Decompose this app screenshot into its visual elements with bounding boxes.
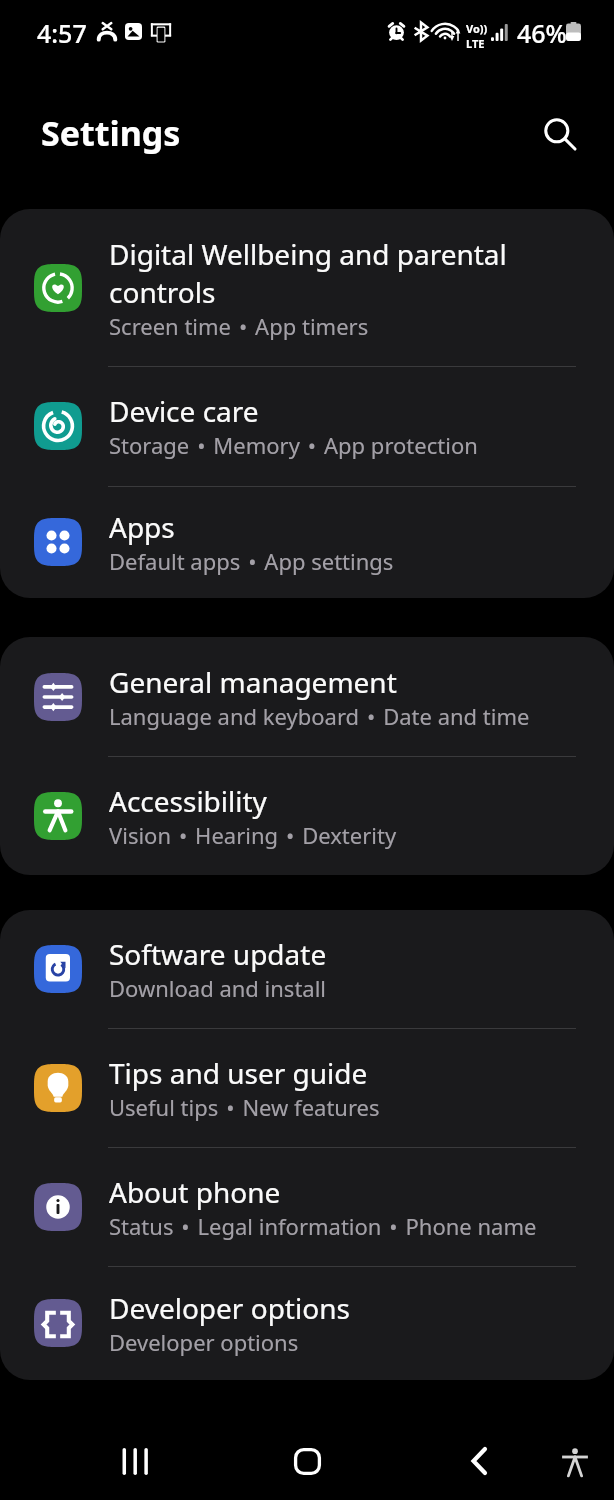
button[interactable]: About phone <box>0 1147 614 1266</box>
button[interactable]: Home <box>257 1411 357 1500</box>
staticText: Vo)) <box>466 21 488 36</box>
staticText: Default apps • App settings <box>109 546 394 576</box>
staticText: General management <box>109 663 397 701</box>
button[interactable]: Back <box>429 1411 529 1500</box>
button[interactable]: Device care <box>0 366 614 486</box>
staticText: Storage • Memory • App protection <box>109 430 478 460</box>
staticText: Download and install <box>109 973 327 1003</box>
staticText: About phone <box>109 1173 281 1211</box>
button[interactable]: Search <box>536 110 584 158</box>
staticText: LTE <box>466 36 485 51</box>
staticText: Useful tips • New features <box>109 1092 380 1122</box>
staticText: Screen time • App timers <box>109 311 369 341</box>
staticText: 46% <box>517 16 567 50</box>
staticText: Tips and user guide <box>109 1054 368 1092</box>
staticText: Device care <box>109 392 259 430</box>
staticText: Apps <box>109 508 175 546</box>
staticText: Digital Wellbeing and parental controls <box>109 235 582 311</box>
staticText: Status • Legal information • Phone name <box>109 1211 537 1241</box>
staticText: Language and keyboard • Date and time <box>109 701 530 731</box>
button[interactable]: Recent apps <box>85 1411 185 1500</box>
button[interactable]: Software update <box>0 910 614 1028</box>
staticText: Developer options <box>109 1289 350 1327</box>
button[interactable]: Accessibility <box>0 756 614 875</box>
staticText: 4:57 <box>37 16 87 50</box>
button[interactable]: Accessibility <box>525 1413 614 1500</box>
staticText: Software update <box>109 935 327 973</box>
staticText: Developer options <box>109 1327 299 1357</box>
button[interactable]: Digital Wellbeing and parental controls <box>0 209 614 366</box>
staticText: Vision • Hearing • Dexterity <box>109 820 397 850</box>
button[interactable]: Developer options <box>0 1266 614 1380</box>
staticText: Settings <box>41 110 181 156</box>
button[interactable]: Tips and user guide <box>0 1028 614 1147</box>
button[interactable]: General management <box>0 637 614 756</box>
button[interactable]: Apps <box>0 486 614 598</box>
staticText: Accessibility <box>109 782 267 820</box>
